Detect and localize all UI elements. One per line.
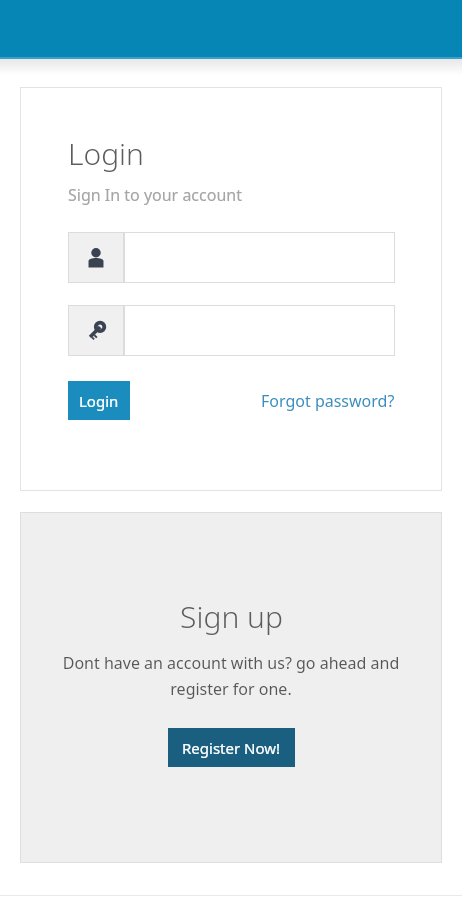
button[interactable]: Username — [68, 232, 395, 283]
staticText: Login — [79, 391, 119, 411]
staticText: Dont have an account with us? go ahead a… — [42, 652, 420, 700]
button[interactable]: Login — [68, 381, 130, 420]
staticText: Sign up — [180, 596, 283, 637]
staticText: Sign In to your account — [68, 184, 242, 206]
other: Username — [68, 232, 124, 283]
staticText: Forgot password? — [261, 390, 395, 412]
button[interactable]: Register Now! — [168, 728, 295, 767]
button[interactable]: Password — [68, 305, 395, 356]
button[interactable]: Forgot password? — [261, 390, 395, 412]
other: Password — [68, 305, 124, 356]
staticText: Login — [68, 133, 144, 174]
staticText: Register Now! — [182, 738, 281, 758]
